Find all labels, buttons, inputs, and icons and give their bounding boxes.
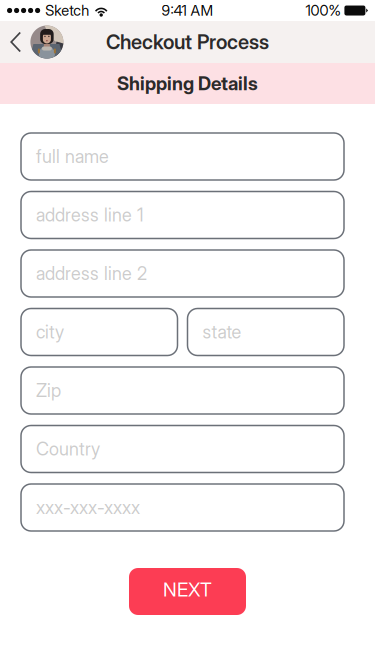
staticText: address line 2 bbox=[36, 263, 147, 284]
button[interactable]: full name bbox=[21, 133, 344, 180]
button[interactable]: state bbox=[187, 308, 344, 355]
staticText: city bbox=[36, 321, 64, 343]
button[interactable]: xxx-xxx-xxxx bbox=[21, 484, 344, 531]
button[interactable]: address line 2 bbox=[21, 250, 344, 297]
staticText: NEXT bbox=[163, 578, 212, 601]
staticText: xxx-xxx-xxxx bbox=[36, 497, 140, 518]
button[interactable]: Zip bbox=[21, 367, 344, 414]
button[interactable]: city bbox=[21, 308, 177, 355]
staticText: Shipping Details bbox=[117, 72, 258, 95]
staticText: Country bbox=[36, 438, 100, 460]
staticText: address line 1 bbox=[36, 204, 144, 226]
staticText: Sketch bbox=[45, 2, 89, 19]
staticText: 100% bbox=[305, 2, 340, 19]
staticText: Zip bbox=[36, 380, 61, 401]
staticText: state bbox=[202, 321, 241, 343]
button[interactable]: Back bbox=[0, 21, 71, 63]
button[interactable]: NEXT bbox=[129, 568, 246, 615]
staticText: 9:41 AM bbox=[161, 2, 213, 19]
button[interactable]: address line 1 bbox=[21, 191, 344, 238]
staticText: Checkout Process bbox=[106, 30, 269, 54]
staticText: full name bbox=[36, 146, 109, 167]
button[interactable]: Country bbox=[21, 425, 344, 472]
